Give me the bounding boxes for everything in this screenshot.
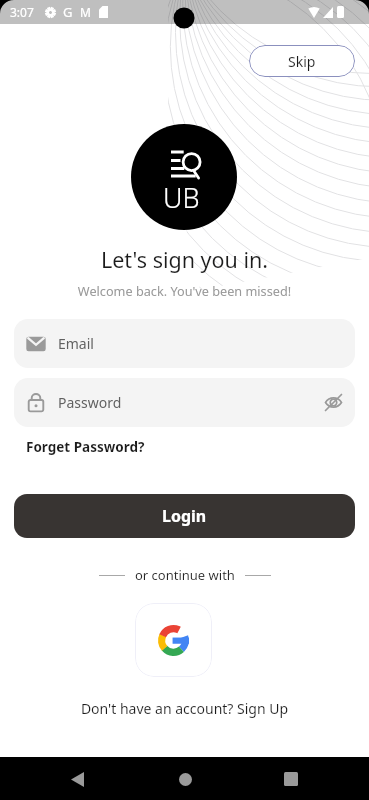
staticText: M [80,4,91,20]
button[interactable]: Back [57,759,97,799]
staticText: Skip [288,52,316,71]
button[interactable]: Password [14,378,355,427]
staticText: UB [163,179,200,216]
staticText: Login [162,505,207,527]
button[interactable]: Forget Password? [26,438,145,456]
button[interactable]: Continue with Google [135,603,212,677]
staticText: Welcome back. You've been missed! [0,282,369,299]
button[interactable]: Email [14,319,355,368]
button[interactable]: Skip [249,45,355,77]
staticText: Password [58,393,122,412]
staticText: G [63,3,73,21]
button[interactable]: Login [14,494,355,538]
staticText: 3:07 [10,4,34,20]
button[interactable]: Don't have an account? Sign Up [0,699,369,718]
staticText: Email [58,334,94,353]
other: Show password [324,393,343,412]
button[interactable]: Recents [271,759,311,799]
staticText: or continue with [135,566,235,584]
button[interactable]: Home [165,759,205,799]
staticText: Let's sign you in. [0,245,369,274]
